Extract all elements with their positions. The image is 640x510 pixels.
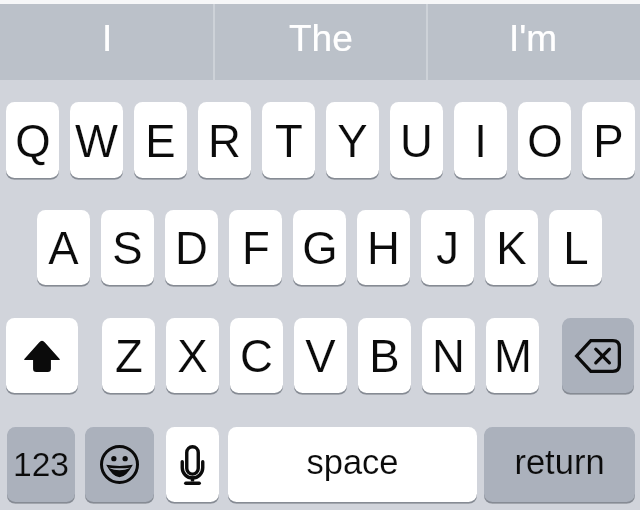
button[interactable]: B xyxy=(358,318,411,393)
staticText: S xyxy=(112,223,143,274)
button[interactable]: A xyxy=(37,210,90,285)
staticText: G xyxy=(302,223,338,274)
button[interactable]: H xyxy=(357,210,410,285)
staticText: J xyxy=(436,223,459,274)
button[interactable]: The xyxy=(214,4,427,80)
staticText: N xyxy=(432,331,465,382)
button[interactable]: return xyxy=(484,427,635,502)
button[interactable]: Q xyxy=(6,102,59,178)
button[interactable]: T xyxy=(262,102,315,178)
staticText: X xyxy=(177,331,208,382)
button[interactable]: Backspace xyxy=(562,318,634,393)
staticText: A xyxy=(48,223,79,274)
button[interactable]: S xyxy=(101,210,154,285)
button[interactable]: E xyxy=(134,102,187,178)
button[interactable]: C xyxy=(230,318,283,393)
button[interactable]: J xyxy=(421,210,474,285)
staticText: M xyxy=(494,331,532,382)
button[interactable]: G xyxy=(293,210,346,285)
button[interactable]: W xyxy=(70,102,123,178)
staticText: V xyxy=(305,331,336,382)
button[interactable]: F xyxy=(229,210,282,285)
staticText: return xyxy=(514,443,605,482)
button[interactable]: I xyxy=(0,4,214,80)
staticText: H xyxy=(367,223,400,274)
staticText: E xyxy=(145,116,176,167)
button[interactable]: U xyxy=(390,102,443,178)
staticText: 123 xyxy=(13,446,69,483)
button[interactable]: Dictate xyxy=(166,427,219,502)
staticText: space xyxy=(306,443,399,482)
button[interactable]: M xyxy=(486,318,539,393)
button[interactable]: R xyxy=(198,102,251,178)
staticText: F xyxy=(242,223,270,274)
staticText: I'm xyxy=(509,18,558,59)
button[interactable]: I xyxy=(454,102,507,178)
button[interactable]: D xyxy=(165,210,218,285)
button[interactable]: Numbers xyxy=(7,427,75,502)
staticText: Q xyxy=(15,116,51,167)
button[interactable]: Shift xyxy=(6,318,78,393)
button[interactable]: Emoji xyxy=(85,427,154,502)
button[interactable]: N xyxy=(422,318,475,393)
staticText: O xyxy=(527,116,563,167)
button[interactable]: L xyxy=(549,210,602,285)
staticText: Y xyxy=(337,116,368,167)
staticText: I xyxy=(102,18,113,59)
staticText: D xyxy=(175,223,208,274)
staticText: W xyxy=(75,116,118,167)
button[interactable]: K xyxy=(485,210,538,285)
staticText: Z xyxy=(115,331,143,382)
button[interactable]: O xyxy=(518,102,571,178)
button[interactable]: P xyxy=(582,102,635,178)
staticText: R xyxy=(208,116,241,167)
staticText: I xyxy=(474,116,487,167)
staticText: K xyxy=(496,223,527,274)
button[interactable]: X xyxy=(166,318,219,393)
staticText: T xyxy=(275,116,303,167)
button[interactable]: V xyxy=(294,318,347,393)
staticText: B xyxy=(369,331,400,382)
staticText: C xyxy=(240,331,273,382)
staticText: U xyxy=(400,116,433,167)
staticText: L xyxy=(563,223,589,274)
button[interactable]: space xyxy=(228,427,477,502)
staticText: P xyxy=(593,116,624,167)
button[interactable]: Y xyxy=(326,102,379,178)
button[interactable]: I'm xyxy=(427,4,640,80)
button[interactable]: Z xyxy=(102,318,155,393)
staticText: The xyxy=(289,18,353,59)
